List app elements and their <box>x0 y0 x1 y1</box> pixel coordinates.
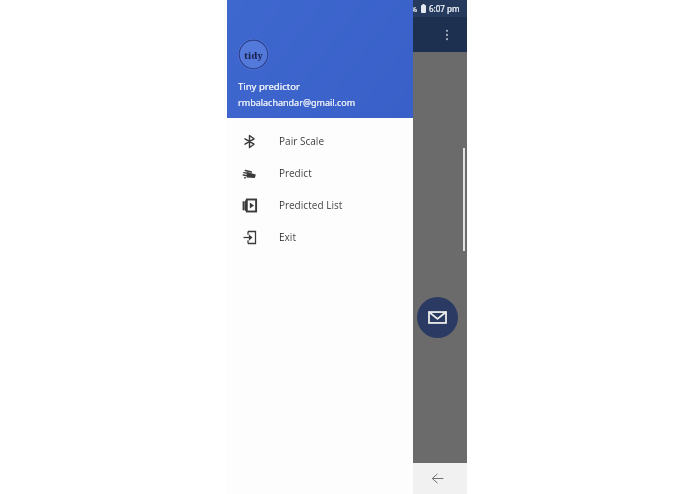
button[interactable]: Back <box>407 463 467 494</box>
button[interactable]: Predict <box>227 157 413 189</box>
staticText: tidy <box>244 49 263 61</box>
staticText: 100% <box>398 4 418 14</box>
button[interactable]: Pair Scale <box>227 125 413 157</box>
staticText: 6:07 pm <box>429 3 460 14</box>
button[interactable]: Send message <box>417 297 458 338</box>
button[interactable]: Predicted List <box>227 189 413 221</box>
staticText: Exit <box>279 230 297 244</box>
staticText: Tiny predictor <box>238 80 300 93</box>
staticText: rmbalachandar@gmail.com <box>238 96 356 108</box>
button[interactable]: More options <box>435 23 459 47</box>
staticText: Pair Scale <box>279 134 325 148</box>
staticText: Predicted List <box>279 198 343 212</box>
staticText: Predict <box>279 166 312 180</box>
button[interactable]: Exit <box>227 221 413 253</box>
